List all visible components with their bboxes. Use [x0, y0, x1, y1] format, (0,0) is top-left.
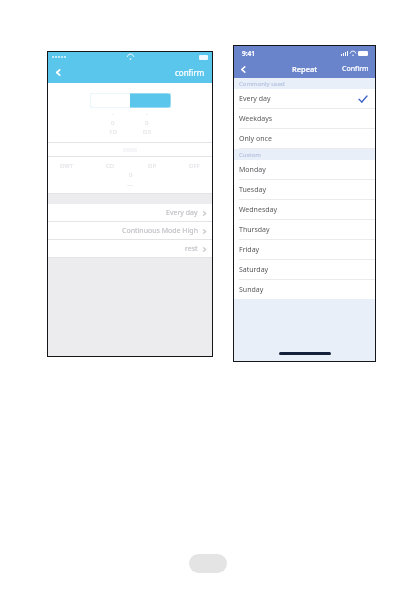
- staticText: Continuous Mode High: [122, 226, 198, 236]
- button[interactable]: Continuous Mode High: [48, 222, 212, 239]
- staticText: D5: [143, 128, 151, 136]
- staticText: 0: [111, 119, 115, 127]
- button[interactable]: Saturday: [234, 260, 375, 279]
- button[interactable]: Monday: [234, 160, 375, 179]
- staticText: Only once: [239, 134, 272, 144]
- staticText: DFF: [189, 162, 200, 170]
- staticText: DWT: [60, 162, 74, 170]
- button[interactable]: Friday: [234, 240, 375, 259]
- staticText: 0: [129, 171, 133, 179]
- staticText: Custom: [239, 151, 261, 159]
- staticText: Repeat: [292, 64, 318, 74]
- staticText: rest: [185, 244, 198, 254]
- staticText: -: [146, 111, 148, 118]
- button[interactable]: Wednesday: [234, 200, 375, 219]
- staticText: Thursday: [239, 225, 270, 235]
- staticText: Tuesday: [239, 185, 266, 195]
- staticText: -: [112, 111, 114, 118]
- button[interactable]: Every day: [48, 204, 212, 221]
- staticText: Saturday: [239, 265, 269, 275]
- staticText: DP: [148, 162, 157, 170]
- staticText: 0: [145, 119, 149, 127]
- button[interactable]: [90, 93, 171, 108]
- staticText: Friday: [239, 245, 260, 255]
- staticText: confirm: [175, 67, 205, 78]
- button[interactable]: Only once: [234, 129, 375, 148]
- staticText: Sunday: [239, 285, 264, 295]
- button[interactable]: Back: [234, 60, 252, 78]
- button[interactable]: Every day: [234, 89, 375, 108]
- staticText: Confirm: [342, 64, 369, 74]
- staticText: —: [127, 181, 134, 189]
- staticText: Wednesday: [239, 205, 278, 215]
- staticText: Monday: [239, 165, 266, 175]
- button[interactable]: Back: [48, 62, 68, 83]
- staticText: CD: [106, 162, 115, 170]
- staticText: 9:41: [242, 49, 255, 58]
- staticText: Commonly used: [239, 80, 285, 88]
- button[interactable]: confirm: [168, 62, 212, 83]
- staticText: Every day: [239, 94, 271, 104]
- staticText: Every day: [166, 208, 198, 218]
- staticText: 1D: [109, 128, 117, 136]
- staticText: Weekdays: [239, 114, 273, 124]
- button[interactable]: Thursday: [234, 220, 375, 239]
- button[interactable]: rest: [48, 240, 212, 257]
- button[interactable]: Tuesday: [234, 180, 375, 199]
- button[interactable]: Sunday: [234, 280, 375, 299]
- button[interactable]: Confirm: [336, 60, 375, 78]
- button[interactable]: Weekdays: [234, 109, 375, 128]
